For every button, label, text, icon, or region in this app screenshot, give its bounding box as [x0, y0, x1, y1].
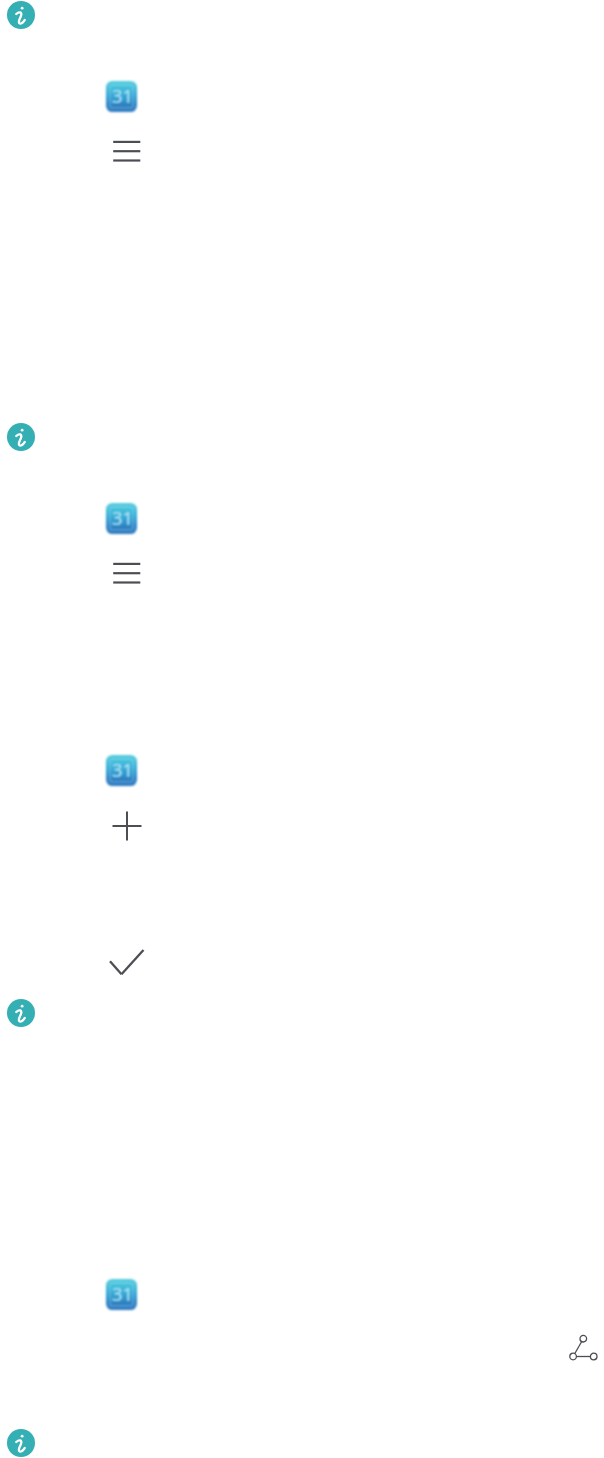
button[interactable]: Information	[7, 423, 35, 451]
staticText: 31	[112, 757, 134, 782]
button[interactable]: Information	[7, 1, 35, 29]
button[interactable]: Information	[7, 999, 35, 1027]
button[interactable]: Information	[7, 1429, 35, 1457]
button[interactable]: Menu	[113, 139, 141, 165]
button[interactable]: Share	[560, 1325, 598, 1363]
button[interactable]: Add	[112, 811, 142, 841]
staticText: 31	[112, 83, 134, 108]
button[interactable]: Done	[110, 948, 146, 976]
staticText: 31	[112, 505, 134, 530]
button[interactable]: Menu	[113, 561, 141, 587]
staticText: 31	[112, 1281, 134, 1306]
